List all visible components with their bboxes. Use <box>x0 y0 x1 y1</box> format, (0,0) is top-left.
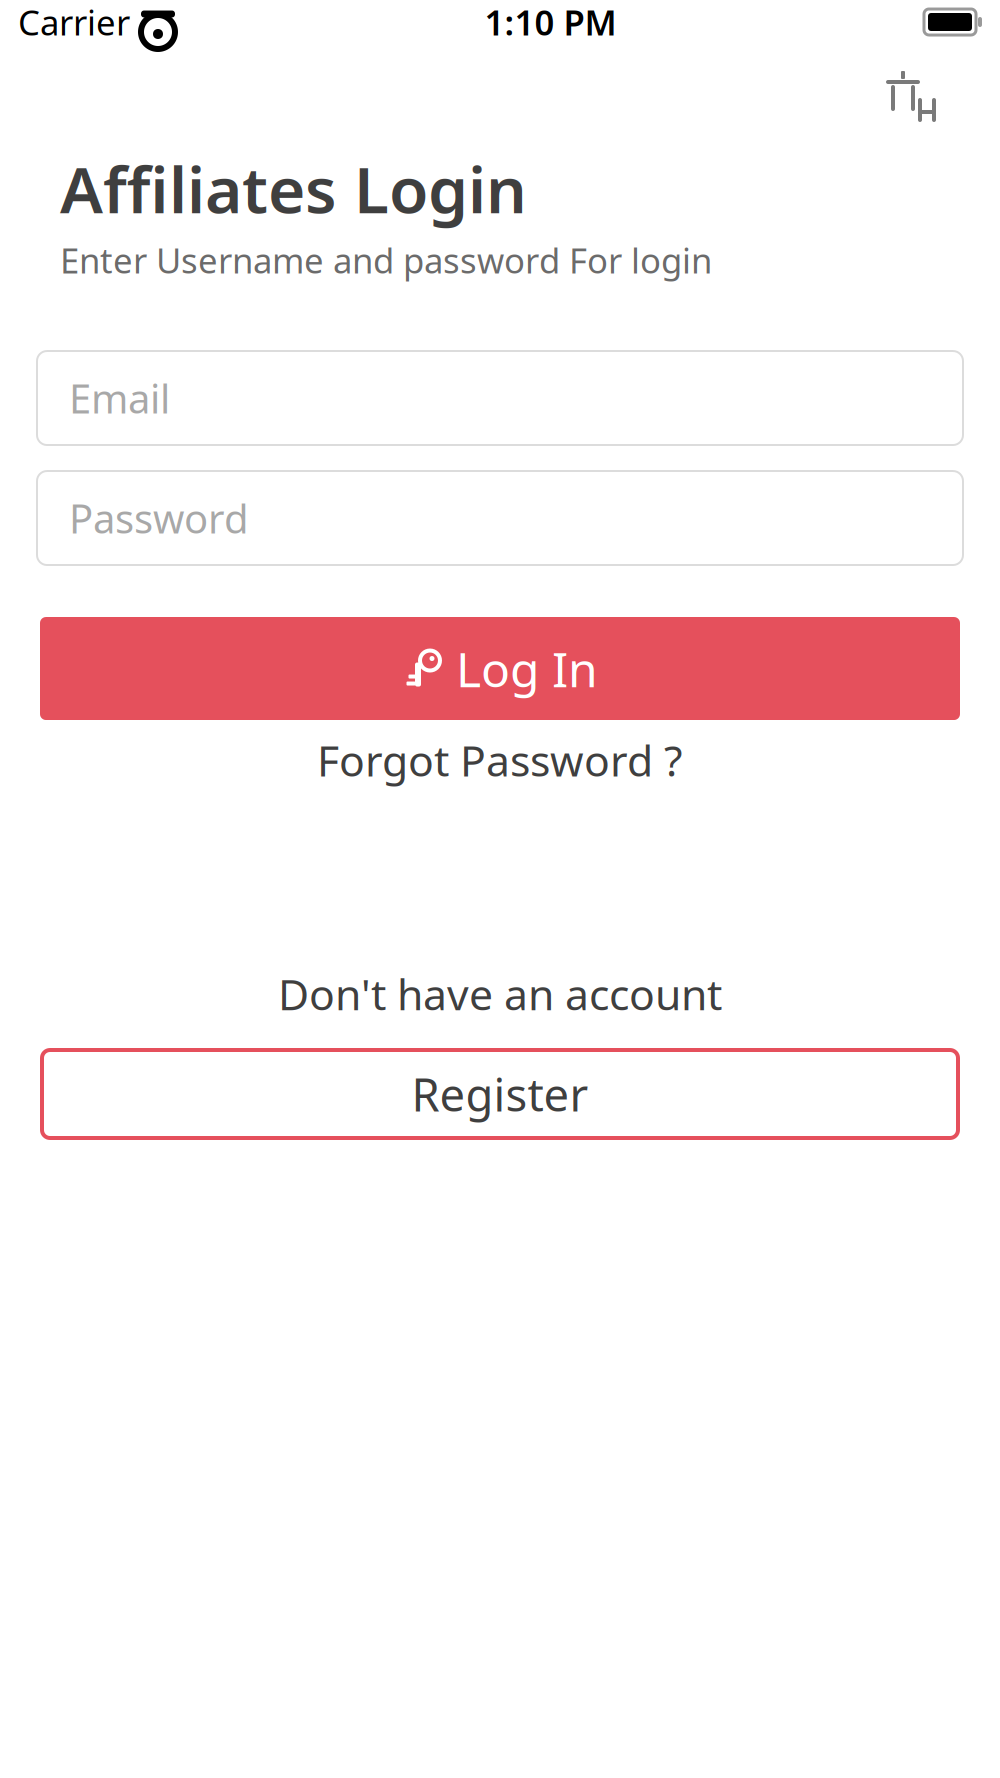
staticText: Log In <box>456 637 598 700</box>
button[interactable]: Register <box>42 1050 958 1138</box>
staticText: Forgot Password ? <box>317 732 683 788</box>
staticText: Email <box>69 371 170 425</box>
staticText: Don't have an account <box>278 965 722 1022</box>
staticText: Register <box>411 1064 588 1124</box>
staticText: Carrier <box>18 0 130 45</box>
staticText: Enter Username and password For login <box>60 237 712 283</box>
staticText: 1:10 PM <box>484 0 616 45</box>
staticText: Password <box>69 491 249 545</box>
staticText <box>130 0 139 45</box>
button[interactable]: Log In <box>40 617 960 720</box>
staticText: Affiliates Login <box>60 146 527 231</box>
button[interactable]: Forgot Password ? <box>40 730 960 790</box>
button[interactable]: Change language <box>878 64 942 128</box>
